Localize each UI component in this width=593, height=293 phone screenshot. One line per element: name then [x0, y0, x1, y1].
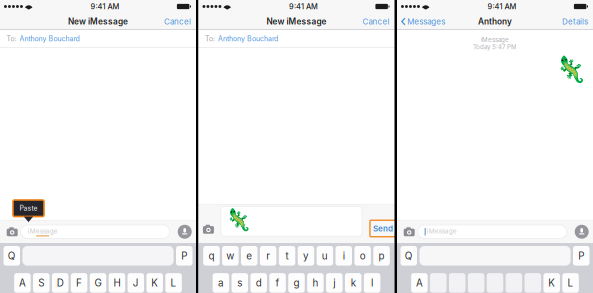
staticText: 9:41 AM: [487, 2, 516, 11]
staticText: o: [360, 250, 366, 262]
staticText: P: [578, 250, 584, 262]
staticText: Details: [562, 17, 588, 26]
staticText: To:: [6, 35, 16, 43]
button[interactable]: Dictate message: [178, 225, 192, 239]
staticText: 🦎: [555, 55, 587, 84]
staticText: w: [226, 250, 234, 262]
staticText: Messages: [407, 17, 445, 26]
button[interactable]: Dictate message: [575, 225, 589, 239]
staticText: F: [76, 277, 82, 289]
button[interactable]: r: [260, 246, 276, 266]
staticText: h: [312, 277, 318, 289]
button[interactable]: Q: [3, 246, 20, 266]
staticText: f: [276, 277, 280, 289]
button[interactable]: h: [307, 273, 324, 293]
staticText: Q: [8, 250, 16, 262]
button[interactable]: s: [231, 273, 248, 293]
staticText: P: [181, 250, 187, 262]
button[interactable]: P: [176, 246, 192, 266]
button[interactable]: Q: [400, 246, 417, 266]
staticText: 🦎: [225, 207, 252, 232]
staticText: l: [371, 277, 373, 289]
button[interactable]: f: [269, 273, 286, 293]
button[interactable]: o: [354, 246, 371, 266]
staticText: Q: [405, 250, 413, 262]
staticText: t: [285, 250, 288, 262]
staticText: L: [171, 277, 177, 289]
button[interactable]: g: [288, 273, 305, 293]
staticText: d: [256, 277, 262, 289]
staticText: H: [113, 277, 120, 289]
button[interactable]: q: [203, 246, 220, 266]
staticText: u: [322, 250, 328, 262]
button[interactable]: G: [90, 273, 106, 293]
staticText: A: [416, 277, 423, 289]
button[interactable]: J: [128, 273, 144, 293]
button[interactable]: Take photo: [404, 227, 415, 236]
staticText: G: [94, 277, 101, 289]
button[interactable]: [198, 18, 202, 25]
staticText: Send: [373, 224, 393, 233]
button[interactable]: t: [279, 246, 295, 266]
staticText: D: [57, 277, 64, 289]
staticText: 9:41 AM: [90, 2, 119, 11]
button[interactable]: e: [241, 246, 257, 266]
button[interactable]: A: [14, 273, 31, 293]
staticText: A: [19, 277, 26, 289]
staticText: New iMessage: [266, 16, 326, 26]
staticText: i: [343, 250, 345, 262]
staticText: New iMessage: [68, 16, 128, 26]
button[interactable]: H: [109, 273, 125, 293]
staticText: Anthony: [478, 16, 512, 26]
staticText: y: [303, 250, 309, 262]
button[interactable]: D: [52, 273, 68, 293]
button[interactable]: P: [573, 246, 589, 266]
staticText: Cancel: [362, 17, 389, 26]
staticText: K: [548, 277, 555, 289]
button[interactable]: Take photo: [203, 225, 214, 234]
staticText: iMessage: [427, 227, 457, 235]
staticText: L: [568, 277, 574, 289]
staticText: To:: [205, 35, 215, 43]
button[interactable]: i: [335, 246, 352, 266]
button[interactable]: K: [543, 273, 560, 293]
staticText: q: [208, 250, 214, 262]
button[interactable]: j: [326, 273, 342, 293]
staticText: Today 5:47 PM: [473, 43, 517, 51]
button[interactable]: Cancel: [362, 13, 394, 30]
staticText: Cancel: [164, 17, 191, 26]
staticText: k: [351, 277, 356, 289]
staticText: iMessage: [481, 36, 509, 43]
staticText: s: [237, 277, 242, 289]
button[interactable]: Messages: [397, 13, 445, 30]
staticText: g: [293, 277, 299, 289]
staticText: j: [333, 277, 335, 289]
button[interactable]: L: [562, 273, 579, 293]
button[interactable]: p: [373, 246, 390, 266]
button[interactable]: Cancel: [164, 13, 196, 30]
button[interactable]: S: [33, 273, 50, 293]
button[interactable]: L: [165, 273, 182, 293]
staticText: S: [38, 277, 44, 289]
button[interactable]: A: [411, 273, 428, 293]
button[interactable]: u: [317, 246, 333, 266]
button[interactable]: Take photo: [7, 227, 18, 236]
staticText: a: [218, 277, 224, 289]
staticText: Anthony Bouchard: [218, 35, 278, 43]
staticText: 9:41 AM: [289, 2, 318, 11]
button[interactable]: Send: [370, 220, 396, 237]
button[interactable]: l: [364, 273, 380, 293]
staticText: e: [246, 250, 252, 262]
staticText: Paste: [19, 204, 37, 212]
button[interactable]: Details: [562, 13, 593, 30]
button[interactable]: F: [71, 273, 87, 293]
button[interactable]: d: [250, 273, 267, 293]
button[interactable]: w: [222, 246, 239, 266]
staticText: iMessage: [28, 227, 58, 235]
staticText: J: [133, 277, 139, 289]
button[interactable]: K: [146, 273, 163, 293]
button[interactable]: a: [213, 273, 229, 293]
button[interactable]: y: [298, 246, 314, 266]
button[interactable]: k: [345, 273, 361, 293]
